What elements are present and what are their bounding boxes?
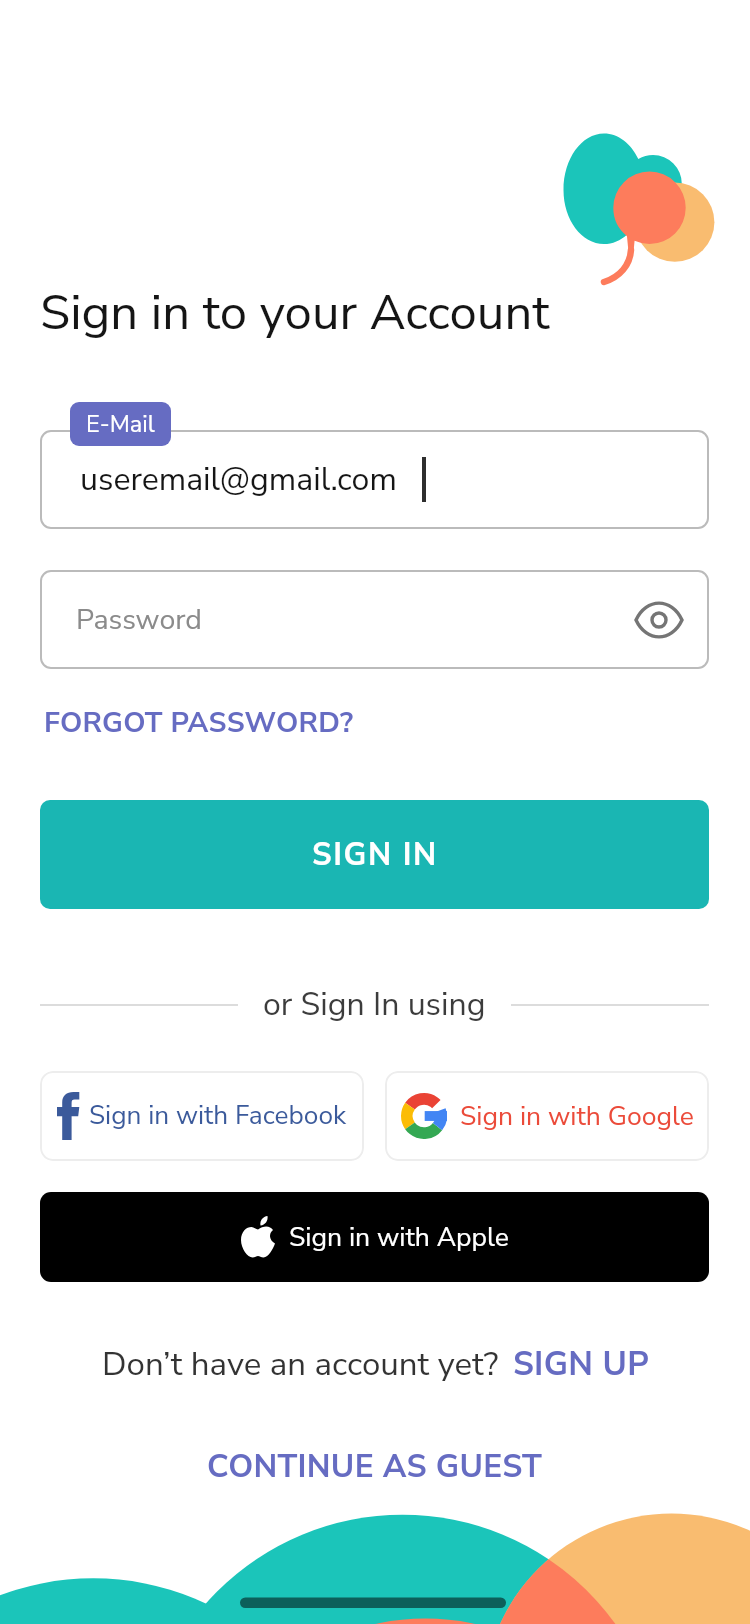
- button[interactable]: Sign in with Apple: [40, 1192, 709, 1282]
- staticText: Sign in with Apple: [289, 1219, 509, 1255]
- staticText: Sign in with Google: [460, 1098, 694, 1134]
- button[interactable]: Sign in with Google: [385, 1071, 709, 1161]
- button[interactable]: FORGOT PASSWORD?: [41, 700, 357, 745]
- button[interactable]: SIGN IN: [40, 800, 709, 909]
- button[interactable]: Sign in with Facebook: [40, 1071, 364, 1161]
- button[interactable]: Show password: [628, 589, 690, 651]
- staticText: useremail@gmail.com: [80, 458, 397, 502]
- staticText: FORGOT PASSWORD?: [44, 703, 354, 742]
- button[interactable]: CONTINUE AS GUEST: [199, 1441, 551, 1492]
- staticText: SIGN IN: [312, 834, 438, 876]
- staticText: or Sign In using: [263, 983, 486, 1027]
- staticText: CONTINUE AS GUEST: [207, 1445, 543, 1488]
- staticText: SIGN UP: [513, 1342, 649, 1387]
- staticText: Password: [76, 600, 202, 639]
- staticText: Sign in with Facebook: [89, 1098, 347, 1134]
- button[interactable]: E-Mail: [70, 402, 171, 446]
- button[interactable]: useremail@gmail.com: [40, 430, 709, 529]
- staticText: Sign in to your Account: [40, 279, 550, 346]
- button[interactable]: SIGN UP: [513, 1342, 649, 1387]
- staticText: Don’t have an account yet?: [102, 1342, 499, 1387]
- staticText: E-Mail: [86, 408, 155, 440]
- button[interactable]: Password: [40, 570, 709, 669]
